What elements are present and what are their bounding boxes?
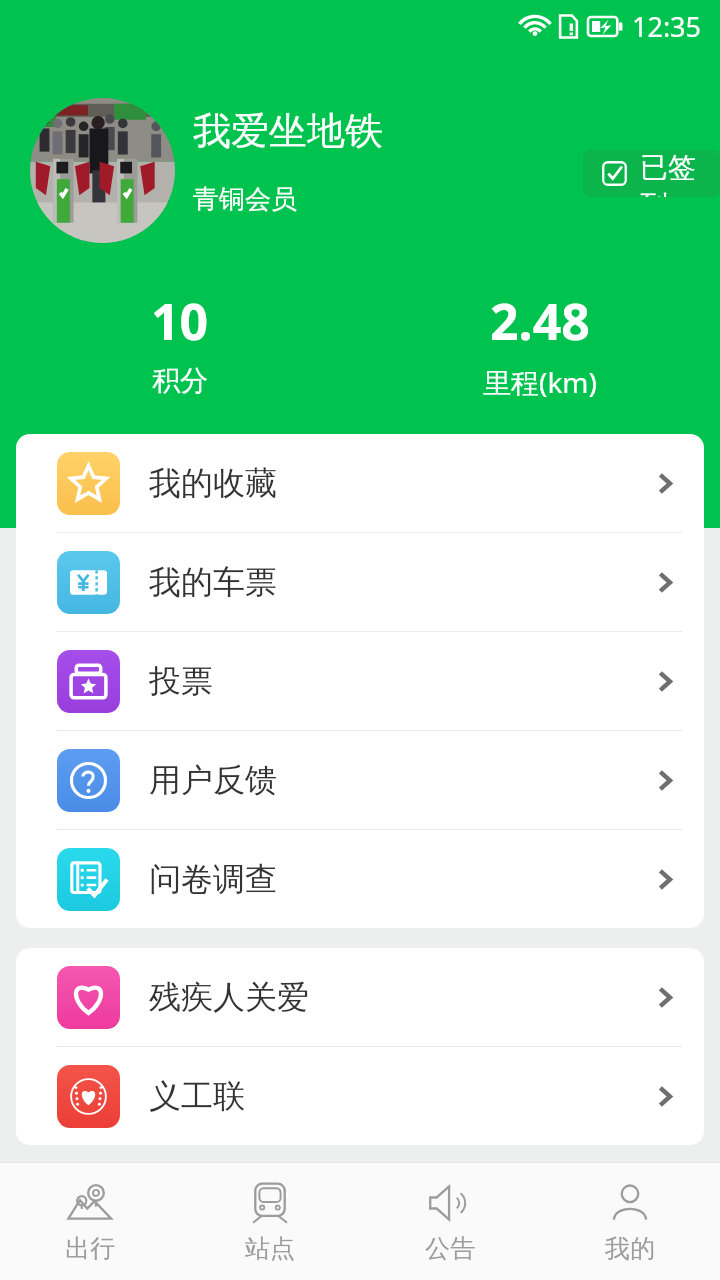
staticText: 我的 <box>605 1233 655 1264</box>
staticText: 已签到 <box>640 150 720 197</box>
staticText: 积分 <box>152 363 208 398</box>
staticText: 青铜会员 <box>193 183 297 216</box>
staticText: 12:35 <box>632 8 702 45</box>
button[interactable]: 残疾人关爱 <box>16 948 704 1046</box>
button[interactable]: 用户反馈 <box>16 731 704 829</box>
staticText: 2.48 <box>490 287 590 355</box>
staticText: 我爱坐地铁 <box>193 107 383 155</box>
staticText: 里程(km) <box>483 363 597 401</box>
button[interactable]: 出行 <box>0 1163 180 1280</box>
button[interactable]: 问卷调查 <box>16 830 704 928</box>
staticText: 我的收藏 <box>149 463 277 503</box>
staticText: 10 <box>151 287 209 355</box>
button[interactable]: 站点 <box>180 1163 360 1280</box>
button[interactable]: 我的车票 <box>16 533 704 631</box>
staticText: 义工联 <box>149 1076 245 1116</box>
button[interactable]: 我的 <box>540 1163 720 1280</box>
button[interactable]: 我的收藏 <box>16 434 704 532</box>
button[interactable]: 义工联 <box>16 1047 704 1145</box>
staticText: 公告 <box>425 1233 475 1264</box>
button[interactable]: 2.48 <box>360 287 720 401</box>
button[interactable]: 投票 <box>16 632 704 730</box>
button[interactable]: 10 <box>0 287 360 398</box>
staticText: 用户反馈 <box>149 760 277 800</box>
staticText: 残疾人关爱 <box>149 977 309 1017</box>
button[interactable]: 公告 <box>360 1163 540 1280</box>
button[interactable]: Profile photo <box>30 98 175 243</box>
staticText: 站点 <box>245 1233 295 1264</box>
button[interactable]: 已签到 <box>583 150 720 197</box>
staticText: 投票 <box>149 661 213 701</box>
staticText: 问卷调查 <box>149 859 277 899</box>
staticText: 我的车票 <box>149 562 277 602</box>
staticText: 出行 <box>65 1233 115 1264</box>
